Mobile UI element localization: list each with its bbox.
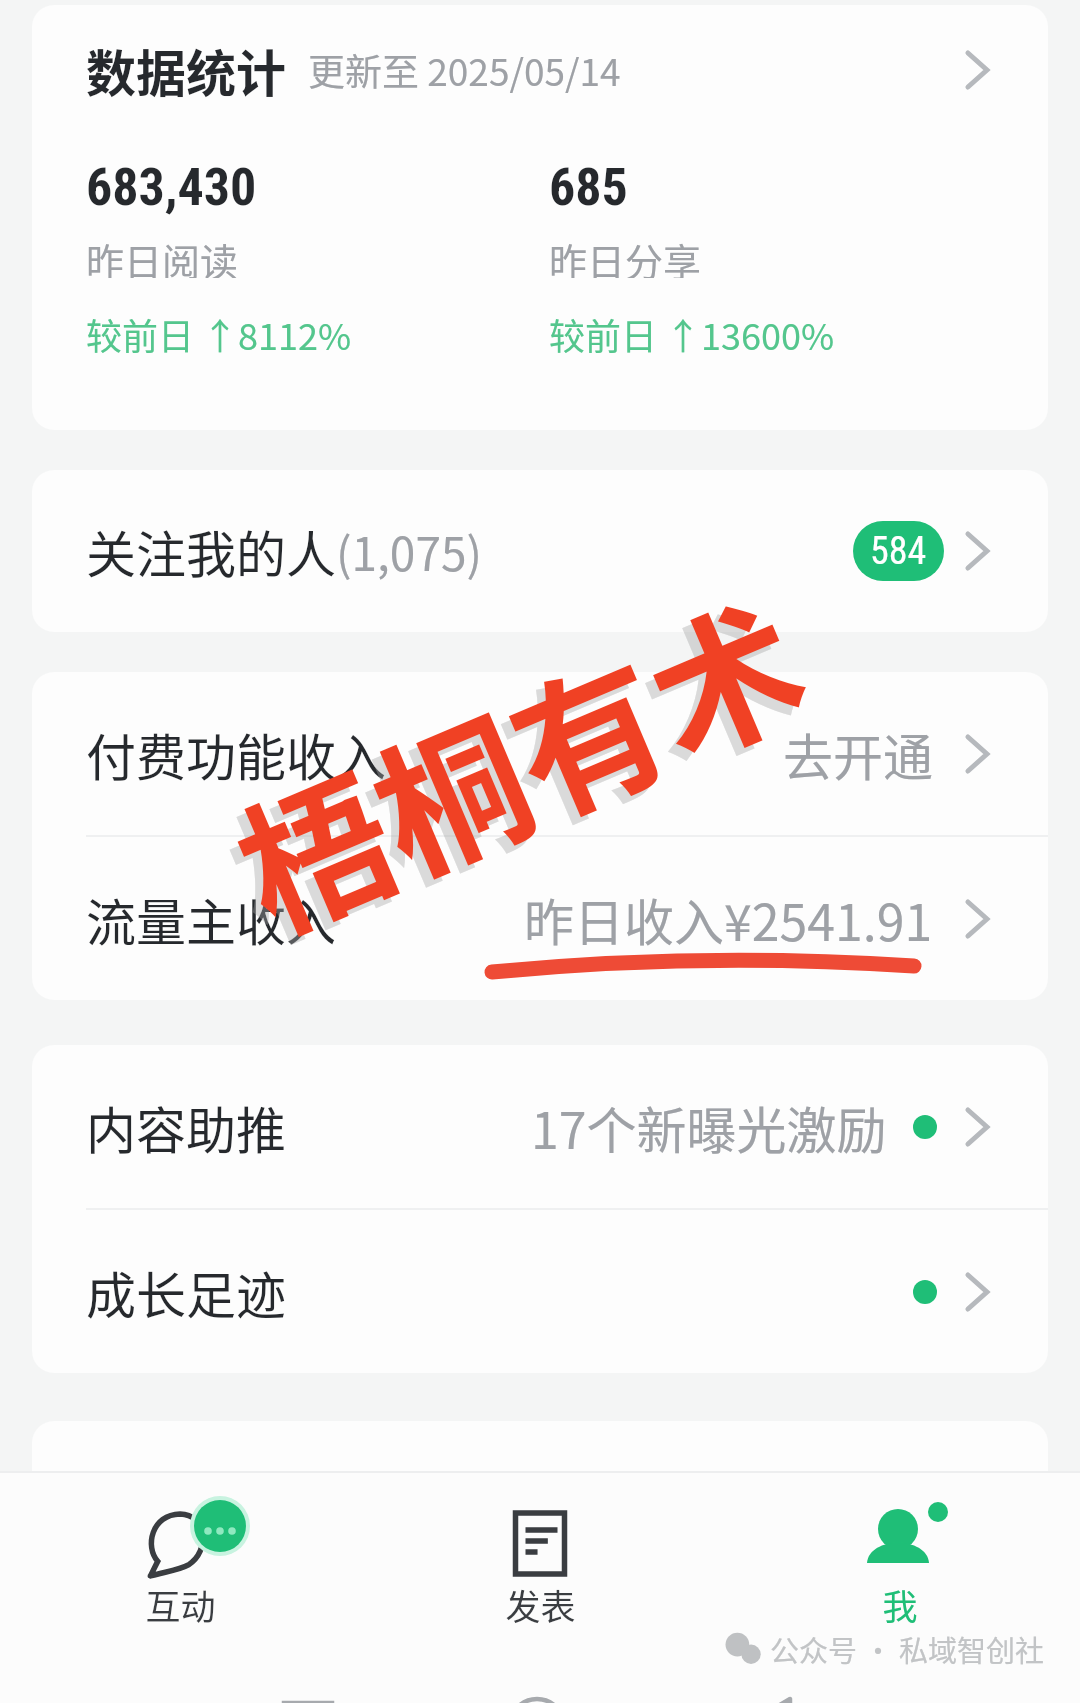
button[interactable]: 内容助推	[32, 1045, 1048, 1208]
staticText: 公众号 · 私域智创社	[770, 1628, 1044, 1670]
button[interactable]: 我	[720, 1473, 1080, 1651]
staticText: 较前日 ↑13600%	[549, 308, 835, 360]
staticText: 584	[870, 529, 927, 574]
staticText: 梧桐有术	[196, 553, 824, 981]
staticText: 685	[549, 157, 628, 218]
staticText: 发表	[505, 1579, 576, 1625]
button[interactable]: 成长足迹	[32, 1210, 1048, 1373]
button[interactable]: 关注我的人	[32, 470, 1048, 632]
staticText: 付费功能收入	[86, 718, 386, 790]
staticText: 较前日 ↑8112%	[86, 308, 352, 360]
button[interactable]: 互动	[0, 1473, 360, 1651]
staticText: 683,430	[86, 157, 257, 218]
button[interactable]: 数据统计	[32, 5, 1048, 430]
staticText: 我	[882, 1579, 918, 1625]
staticText: 昨日收入¥2541.91	[524, 883, 933, 955]
button[interactable]: 发表	[360, 1473, 720, 1651]
staticText: (1,075)	[336, 518, 483, 585]
staticText: 昨日阅读	[86, 232, 239, 278]
button[interactable]: 流量主收入	[32, 837, 1048, 1000]
staticText: 成长足迹	[86, 1256, 286, 1328]
staticText: 17个新曝光激励	[531, 1091, 887, 1163]
staticText: 数据统计	[86, 34, 286, 106]
staticText: 内容助推	[86, 1091, 286, 1163]
staticText: 昨日分享	[549, 232, 702, 278]
button[interactable]: 付费功能收入	[32, 672, 1048, 835]
staticText: 互动	[145, 1579, 216, 1625]
staticText: 流量主收入	[86, 883, 336, 955]
staticText: 去开通	[783, 718, 933, 790]
staticText: 更新至 2025/05/14	[308, 43, 621, 97]
staticText: 关注我的人	[86, 515, 336, 587]
staticText: 梧桐有术	[204, 545, 832, 973]
